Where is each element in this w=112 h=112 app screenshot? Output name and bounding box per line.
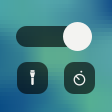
button[interactable]: Flashlight — [17, 62, 48, 94]
button[interactable]: Brightness — [16, 22, 92, 51]
button[interactable]: Timer — [64, 62, 95, 94]
